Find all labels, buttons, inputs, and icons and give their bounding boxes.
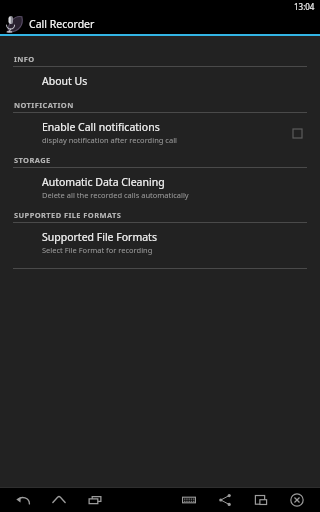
staticText: STORAGE bbox=[14, 155, 51, 165]
staticText: 13:04 bbox=[294, 1, 315, 12]
button[interactable]: Keyboard bbox=[178, 489, 200, 511]
button[interactable]: About Us bbox=[0, 67, 320, 95]
button[interactable]: Share bbox=[214, 489, 236, 511]
button[interactable]: Enable Call notifications bbox=[0, 113, 320, 152]
staticText: Supported File Formats bbox=[42, 230, 157, 244]
staticText: NOTIFICATION bbox=[14, 100, 74, 110]
button[interactable]: Recent apps bbox=[84, 489, 106, 511]
staticText: Delete all the recorded calls automatica… bbox=[42, 190, 189, 200]
staticText: Call Recorder bbox=[29, 17, 95, 31]
staticText: INFO bbox=[14, 54, 35, 64]
staticText: Select File Format for recording bbox=[42, 245, 153, 255]
button[interactable]: Home bbox=[48, 489, 70, 511]
button[interactable]: Close bbox=[286, 489, 308, 511]
staticText: About Us bbox=[42, 74, 88, 88]
button[interactable]: Back bbox=[12, 489, 34, 511]
staticText: SUPPORTED FILE FORMATS bbox=[14, 210, 122, 220]
staticText: Enable Call notifications bbox=[42, 120, 160, 134]
staticText: display notification after recording cal… bbox=[42, 135, 178, 145]
button[interactable]: Supported File Formats bbox=[0, 223, 320, 262]
button[interactable]: Window bbox=[250, 489, 272, 511]
button[interactable]: Automatic Data Cleaning bbox=[0, 168, 320, 207]
staticText: Automatic Data Cleaning bbox=[42, 175, 165, 189]
button[interactable]: Enable Call notifications checkbox bbox=[288, 124, 306, 142]
